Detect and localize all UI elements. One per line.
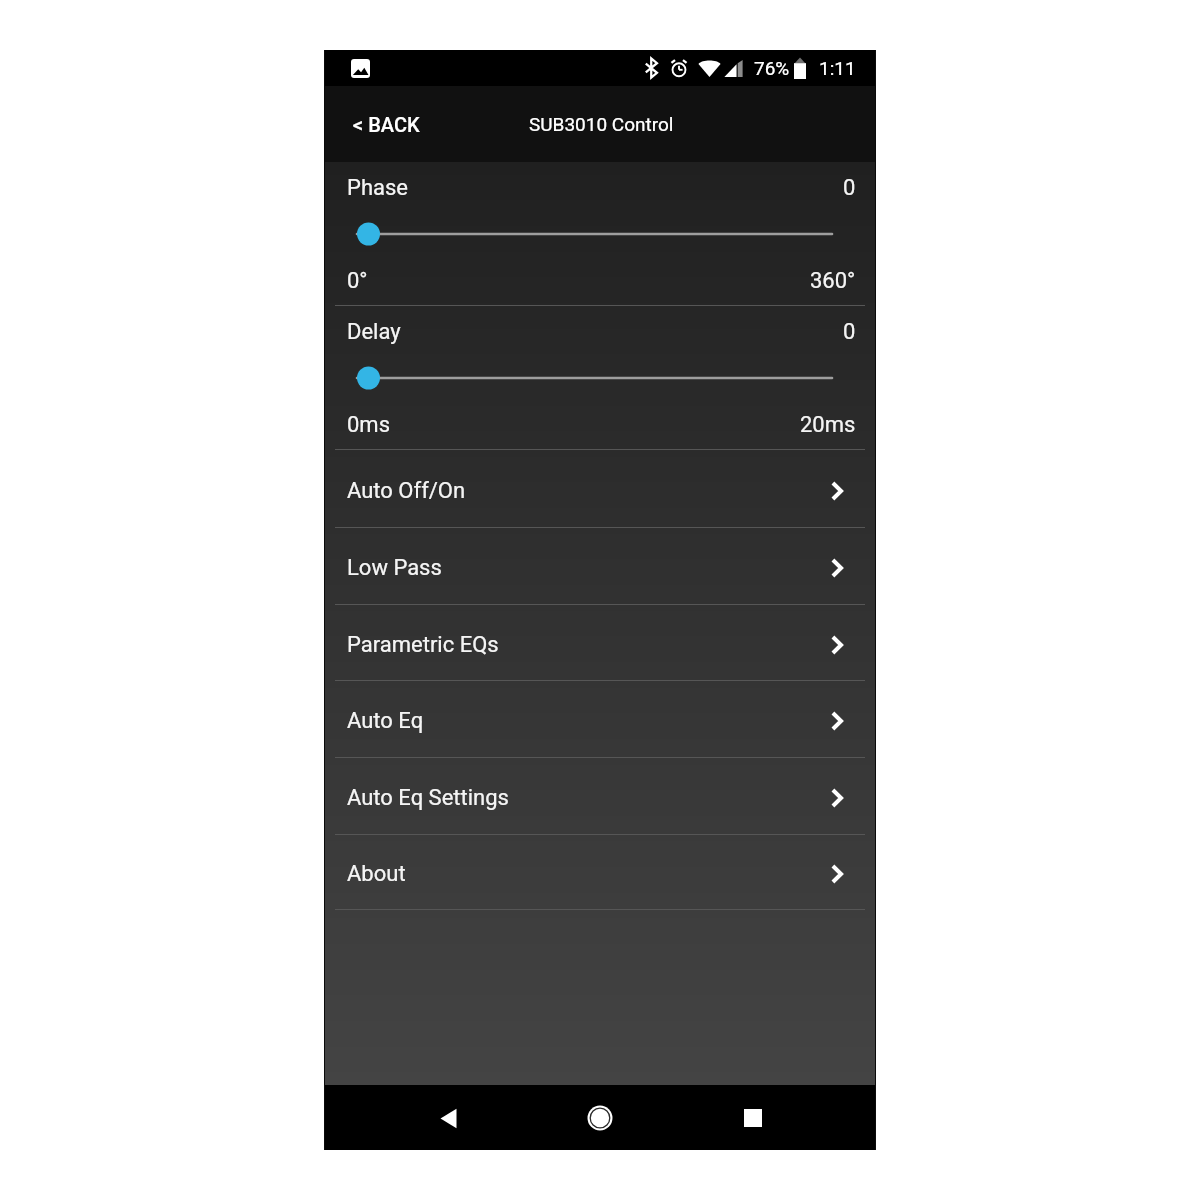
staticText: < BACK bbox=[353, 113, 420, 136]
staticText: 0 bbox=[843, 175, 856, 201]
button[interactable]: Phase bbox=[325, 162, 875, 305]
staticText: SUB3010 Control bbox=[529, 113, 674, 135]
button[interactable]: Recents bbox=[723, 1088, 783, 1148]
staticText: Auto Off/On bbox=[347, 478, 466, 504]
staticText: 0 bbox=[843, 319, 856, 345]
staticText: Auto Eq bbox=[347, 708, 424, 734]
staticText: Parametric EQs bbox=[347, 632, 499, 658]
button[interactable]: Back bbox=[418, 1088, 478, 1148]
staticText: 1:11 bbox=[819, 57, 856, 79]
button[interactable]: Delay bbox=[325, 306, 875, 449]
staticText: Auto Eq Settings bbox=[347, 785, 509, 811]
button[interactable]: Auto Eq Settings bbox=[325, 758, 875, 834]
staticText: 20ms bbox=[800, 412, 856, 438]
staticText: 360° bbox=[810, 268, 856, 294]
staticText: 0ms bbox=[347, 412, 391, 438]
button[interactable]: Auto Eq bbox=[325, 681, 875, 757]
button[interactable]: Low Pass bbox=[325, 528, 875, 604]
staticText: Low Pass bbox=[347, 555, 442, 581]
button[interactable]: About bbox=[325, 835, 875, 909]
button[interactable]: Parametric EQs bbox=[325, 605, 875, 680]
button[interactable]: Auto Off/On bbox=[325, 450, 875, 527]
staticText: Delay bbox=[347, 319, 401, 345]
staticText: 76% bbox=[754, 57, 790, 79]
staticText: Phase bbox=[347, 175, 408, 201]
staticText: 0° bbox=[347, 268, 368, 294]
staticText: About bbox=[347, 861, 406, 887]
button[interactable]: < BACK bbox=[338, 101, 435, 148]
button[interactable]: Home bbox=[570, 1088, 630, 1148]
